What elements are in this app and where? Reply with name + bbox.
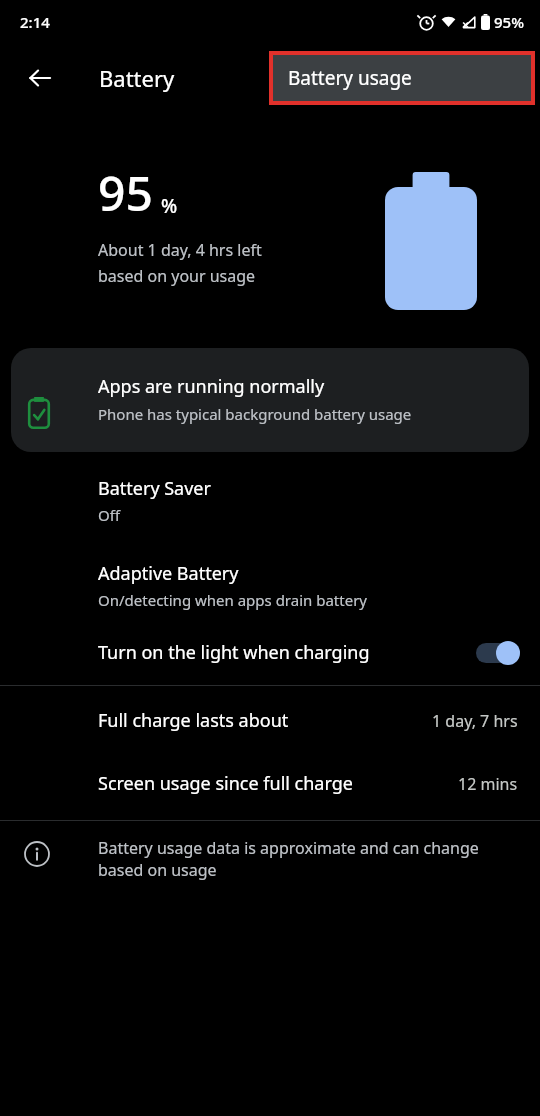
staticText: 12 mins — [458, 773, 518, 795]
staticText: Turn on the light when charging — [98, 640, 370, 665]
staticText: 1 day, 7 hrs — [432, 710, 518, 732]
button[interactable]: Battery Saver — [0, 474, 540, 527]
staticText: Full charge lasts about — [98, 708, 289, 733]
staticText: Battery — [99, 63, 175, 93]
staticText: 95 — [98, 160, 153, 225]
staticText: Battery usage data is approximate and ca… — [98, 837, 510, 880]
button[interactable]: Battery usage — [273, 55, 531, 101]
staticText: Off — [98, 505, 121, 525]
staticText: Apps are running normally — [98, 374, 325, 399]
staticText: % — [161, 193, 178, 219]
staticText: 95% — [494, 12, 524, 32]
staticText: 2:14 — [20, 12, 50, 32]
button[interactable]: Full charge lasts about — [0, 708, 540, 733]
staticText: About 1 day, 4 hrs left — [98, 239, 262, 261]
staticText: based on your usage — [98, 265, 256, 287]
button[interactable]: Adaptive Battery — [0, 559, 540, 612]
staticText: Screen usage since full charge — [98, 771, 353, 796]
staticText: Battery usage — [288, 65, 412, 91]
button[interactable]: Screen usage since full charge — [0, 771, 540, 796]
staticText: Phone has typical background battery usa… — [98, 404, 412, 424]
staticText: On/detecting when apps drain battery — [98, 590, 367, 610]
staticText: Battery Saver — [98, 476, 211, 501]
button[interactable]: Apps are running normally — [11, 348, 529, 452]
staticText: Adaptive Battery — [98, 561, 239, 586]
button[interactable]: Back — [16, 54, 64, 102]
button[interactable]: Turn on the light when charging — [0, 640, 540, 665]
